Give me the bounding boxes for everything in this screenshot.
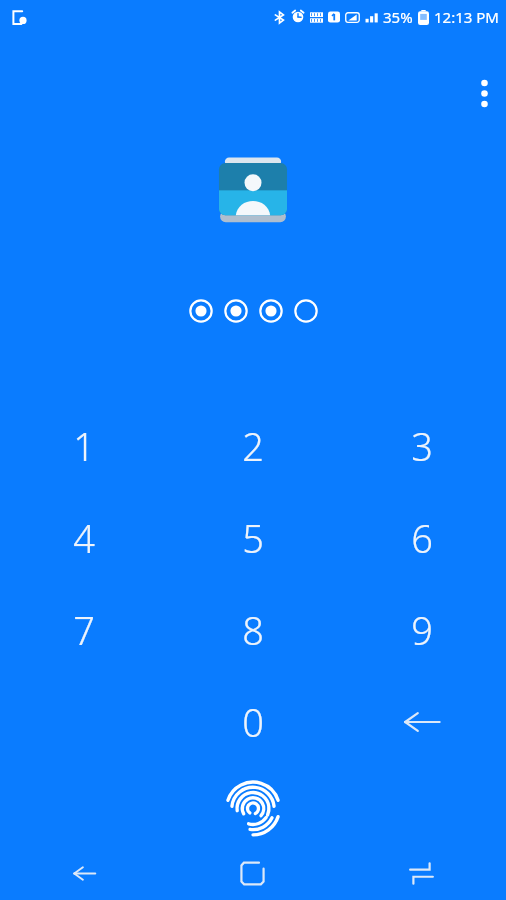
button[interactable]: 6: [337, 492, 506, 584]
button[interactable]: Backspace: [337, 676, 506, 768]
staticText: 8: [242, 604, 264, 656]
button[interactable]: 5: [168, 492, 337, 584]
button[interactable]: Recent apps: [337, 846, 506, 900]
button[interactable]: 1: [0, 400, 168, 492]
button[interactable]: 0: [168, 676, 337, 768]
button[interactable]: Fingerprint unlock: [221, 773, 285, 837]
button[interactable]: Home: [168, 846, 337, 900]
button[interactable]: More options: [462, 64, 506, 122]
button[interactable]: 4: [0, 492, 168, 584]
staticText: 4: [73, 512, 95, 564]
button[interactable]: 2: [168, 400, 337, 492]
staticText: 3: [411, 420, 433, 472]
button[interactable]: 9: [337, 584, 506, 676]
staticText: 6: [411, 512, 433, 564]
button[interactable]: 3: [337, 400, 506, 492]
staticText: 35%: [383, 7, 413, 27]
staticText: 9: [411, 604, 433, 656]
staticText: 1: [73, 420, 95, 472]
staticText: 12:13 PM: [434, 7, 499, 27]
staticText: 2: [242, 420, 264, 472]
staticText: 5: [242, 512, 264, 564]
button[interactable]: 7: [0, 584, 168, 676]
staticText: 0: [242, 696, 264, 748]
button[interactable]: Back: [0, 846, 168, 900]
staticText: 7: [73, 604, 95, 656]
button[interactable]: 8: [168, 584, 337, 676]
